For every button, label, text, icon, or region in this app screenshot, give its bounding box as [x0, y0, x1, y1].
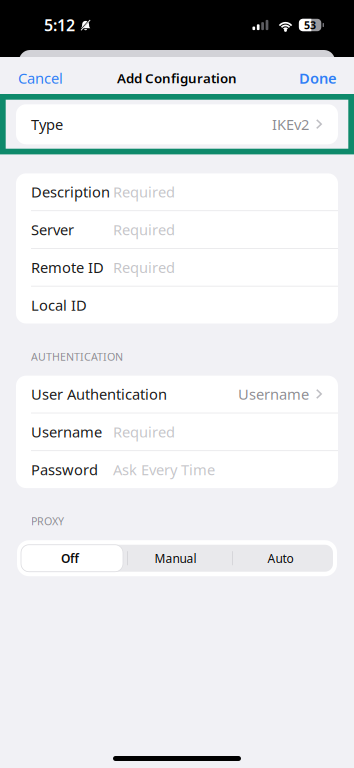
staticText: Type — [31, 115, 63, 134]
staticText: Off — [61, 550, 79, 566]
staticText: Local ID — [31, 295, 87, 315]
staticText: Cancel — [18, 68, 63, 88]
staticText: Password — [31, 460, 98, 479]
staticText: Manual — [154, 550, 196, 566]
button[interactable]: Cancel — [0, 66, 75, 90]
button[interactable]: User Authentication — [16, 376, 338, 413]
staticText: Server — [31, 220, 74, 239]
staticText: 53 — [304, 18, 316, 32]
staticText: Username — [31, 422, 102, 442]
button[interactable]: Auto — [228, 540, 333, 576]
staticText: Remote ID — [31, 258, 104, 277]
staticText: IKEv2 — [272, 115, 309, 134]
staticText: User Authentication — [31, 384, 167, 404]
staticText: Done — [299, 68, 337, 88]
staticText: Required — [113, 258, 175, 277]
staticText: Add Configuration — [117, 69, 237, 87]
staticText: Username — [238, 384, 309, 404]
button[interactable]: Done — [287, 66, 354, 90]
staticText: Auto — [267, 550, 293, 566]
staticText: Required — [113, 182, 175, 202]
staticText: 5:12 — [44, 14, 75, 36]
staticText: PROXY — [31, 514, 64, 528]
staticText: Required — [113, 422, 175, 442]
staticText: AUTHENTICATION — [31, 349, 123, 364]
staticText: Ask Every Time — [113, 460, 215, 479]
button[interactable]: Type — [0, 94, 354, 154]
button[interactable]: Off — [17, 540, 123, 576]
staticText: Description — [31, 182, 110, 202]
staticText: Off — [61, 550, 79, 566]
button[interactable]: Manual — [123, 540, 228, 576]
staticText: Required — [113, 220, 175, 239]
